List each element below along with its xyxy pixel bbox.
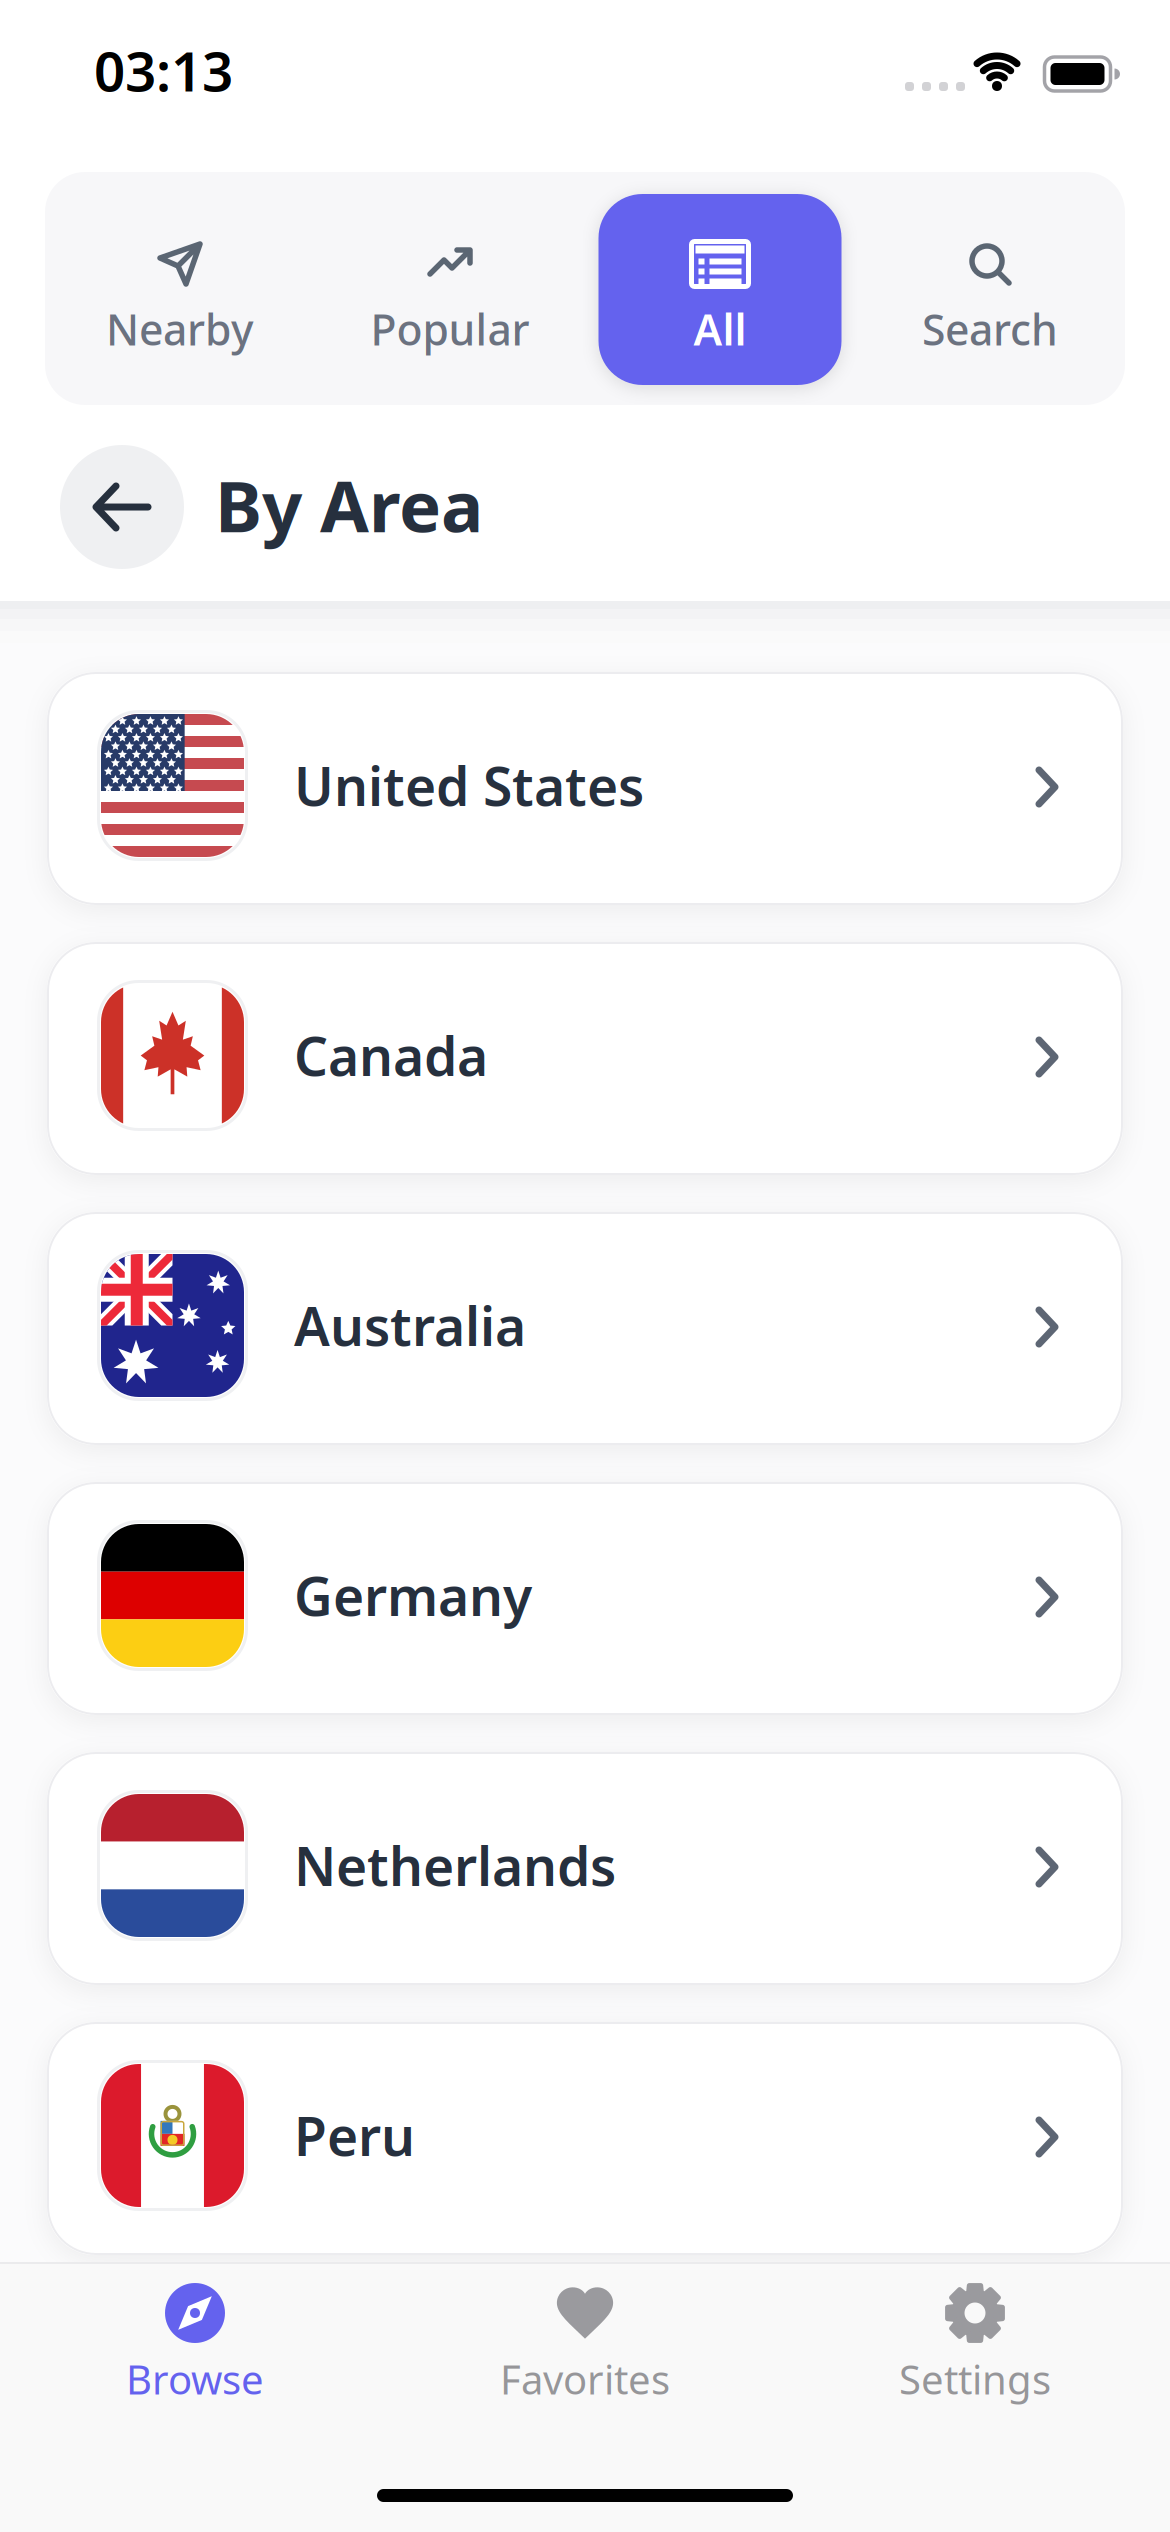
button[interactable]: Browse (0, 2262, 390, 2532)
staticText: Settings (899, 2352, 1051, 2405)
staticText: United States (294, 750, 644, 821)
button[interactable]: Settings (780, 2262, 1170, 2532)
button[interactable]: Peru (47, 2022, 1123, 2255)
staticText: Browse (126, 2352, 264, 2405)
button[interactable]: Favorites (390, 2262, 780, 2532)
staticText: Peru (294, 2100, 415, 2171)
button[interactable]: Back (60, 445, 184, 569)
staticText: Netherlands (294, 1830, 616, 1901)
button[interactable]: Search (855, 172, 1125, 405)
button[interactable]: Nearby (45, 172, 315, 405)
button[interactable]: Australia (47, 1212, 1123, 1445)
button[interactable]: All (585, 172, 855, 405)
button[interactable]: United States (47, 672, 1123, 905)
button[interactable]: Popular (315, 172, 585, 405)
staticText: Favorites (500, 2352, 670, 2405)
button[interactable]: Canada (47, 942, 1123, 1175)
staticText: Canada (294, 1020, 488, 1091)
button[interactable]: Netherlands (47, 1752, 1123, 1985)
staticText: All (693, 301, 746, 357)
staticText: Popular (370, 301, 529, 357)
staticText: Search (922, 301, 1058, 357)
staticText: By Area (215, 458, 483, 552)
staticText: Australia (294, 1290, 526, 1361)
staticText: Germany (294, 1560, 532, 1631)
staticText: Nearby (106, 301, 254, 357)
staticText: 03:13 (94, 34, 233, 107)
button[interactable]: Germany (47, 1482, 1123, 1715)
